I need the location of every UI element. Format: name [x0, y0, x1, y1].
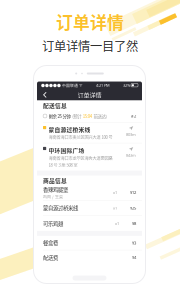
staticText: 803m — [126, 132, 136, 137]
staticText: ¥3 — [132, 240, 136, 245]
staticText: 香辣鸡腿堡 — [43, 185, 68, 193]
staticText: ●●●●● 中国联通 ᯤ — [41, 82, 83, 88]
staticText: 可乐鸡翅 — [43, 219, 63, 227]
staticText: 32% — [123, 83, 130, 88]
staticText: 订单详情 — [77, 90, 101, 99]
staticText: 蒙自源过桥米线 — [49, 125, 91, 133]
staticText: ¥25 — [130, 205, 136, 211]
staticText: x1 — [113, 205, 117, 211]
staticText: ¥8 — [132, 221, 136, 226]
staticText: x1 — [113, 190, 117, 195]
staticText: 订单详情 — [56, 9, 124, 34]
staticText: 配送信息 — [43, 101, 67, 109]
button[interactable]: 中环国际广场 — [37, 143, 142, 171]
staticText: 海南省海口市美兰区国兴大道 100 号 — [49, 134, 113, 140]
staticText: ¥12 — [130, 190, 136, 195]
staticText: 15:04 — [83, 113, 92, 119]
staticText: 配送费 — [43, 253, 58, 261]
staticText: #2 — [131, 113, 136, 119]
staticText: (预计 — [72, 113, 81, 119]
button[interactable]: 蒙自源过桥米线 — [37, 122, 142, 143]
staticText: ¥4 — [132, 255, 136, 260]
staticText: 商品信息 — [43, 176, 67, 184]
staticText: x1 — [115, 221, 119, 226]
staticText: 中环国际广场 — [49, 146, 85, 154]
button[interactable]: 返回 — [39, 88, 51, 101]
staticText: 843m — [126, 153, 136, 158]
staticText: 订单详情一目了然 — [42, 37, 138, 55]
staticText: 鸡肉 / 生菜 — [43, 194, 63, 200]
staticText: 4:21 PM — [96, 83, 110, 88]
staticText: 蒙自源过桥米线 — [43, 204, 78, 212]
staticText: 剩余 25 分钟 — [49, 113, 71, 119]
staticText: 前送达) — [93, 113, 106, 119]
staticText: 餐盒费 — [43, 239, 58, 247]
staticText: 海南省海口市龙华区海秀大道要园路 18 号 3 座 508 室 — [49, 155, 113, 168]
